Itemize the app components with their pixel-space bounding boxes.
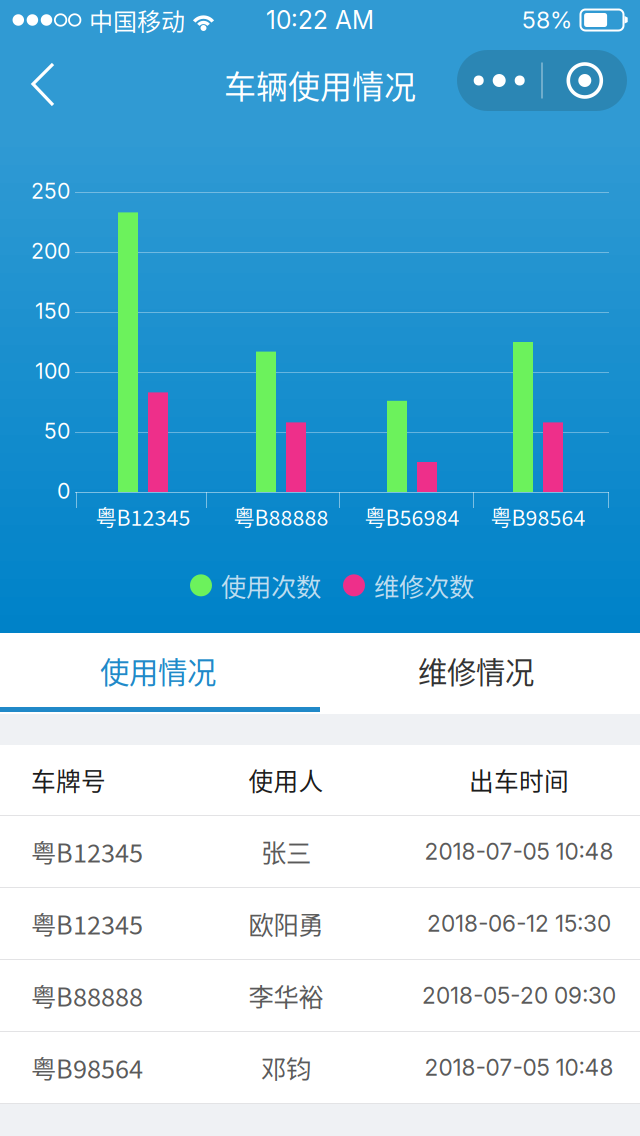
staticText: 250 [31,178,70,204]
button[interactable]: 使用情况 [0,633,316,708]
staticText: 张三 [261,833,311,870]
staticText: 10:22 AM [266,5,374,35]
staticText: 粤B98564 [31,1049,143,1086]
staticText: 维修次数 [374,567,474,604]
button[interactable]: Close [543,50,627,111]
button[interactable]: More [457,50,541,111]
staticText: 粤B12345 [31,905,143,942]
staticText: 维修情况 [418,649,534,692]
staticText: 150 [35,298,70,324]
staticText: 使用次数 [221,567,321,604]
button[interactable]: Back [0,40,79,129]
staticText: 车辆使用情况 [224,61,416,108]
staticText: 粤B98564 [490,501,585,532]
staticText: 欧阳勇 [248,905,323,942]
staticText: 粤B12345 [95,501,190,532]
staticText: 粤B56984 [364,501,459,532]
staticText: 2018-05-20 09:30 [422,982,616,1009]
staticText: 使用情况 [100,649,216,692]
staticText: 2018-07-05 10:48 [424,838,613,865]
staticText: 邓钧 [261,1049,311,1086]
staticText: 100 [35,358,70,384]
staticText: 粤B88888 [31,977,143,1014]
staticText: 粤B12345 [31,833,143,870]
staticText: 58% [522,6,572,34]
button[interactable]: 维修情况 [316,633,636,708]
staticText: 0 [57,478,70,504]
staticText: 车牌号 [31,762,106,798]
staticText: 2018-07-05 10:48 [424,1054,613,1081]
staticText: 50 [44,418,70,444]
staticText: 使用人 [248,762,323,798]
staticText: 粤B88888 [233,501,328,532]
staticText: 李华裕 [248,977,323,1014]
staticText: 中国移动 [89,3,185,37]
staticText: 2018-06-12 15:30 [427,910,611,937]
staticText: 出车时间 [469,762,569,798]
staticText: 200 [31,238,70,264]
